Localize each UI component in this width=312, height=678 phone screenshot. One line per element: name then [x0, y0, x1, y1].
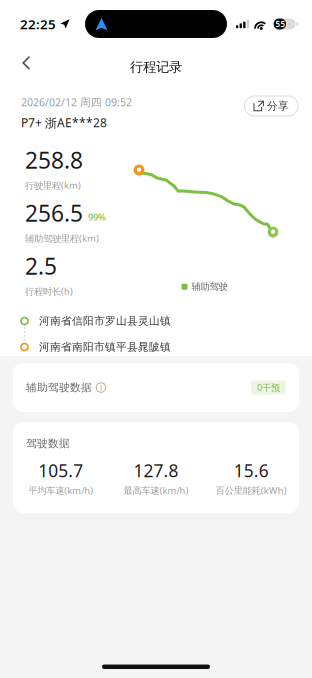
- staticText: i: [100, 382, 102, 393]
- staticText: 行程记录: [130, 59, 182, 75]
- staticText: 行程时长(h): [25, 285, 73, 297]
- staticText: 百公里能耗(kWh): [216, 484, 287, 496]
- staticText: 分享: [267, 99, 289, 112]
- staticText: 55: [276, 19, 286, 29]
- staticText: 22:25: [20, 15, 56, 33]
- staticText: 0干预: [257, 381, 280, 394]
- staticText: 辅助驾驶: [191, 281, 227, 292]
- button[interactable]: 分享: [244, 96, 298, 116]
- staticText: 河南省南阳市镇平县晁陂镇: [39, 340, 171, 353]
- staticText: 平均车速(km/h): [28, 484, 93, 496]
- staticText: 驾驶数据: [26, 437, 70, 450]
- staticText: 辅助驾驶数据: [26, 381, 92, 394]
- staticText: 最高车速(km/h): [123, 484, 188, 496]
- staticText: 105.7: [38, 459, 83, 482]
- button[interactable]: 返回: [8, 47, 44, 79]
- staticText: 15.6: [234, 459, 269, 482]
- staticText: 127.8: [133, 459, 178, 482]
- staticText: 2.5: [25, 251, 57, 281]
- staticText: 行驶里程(km): [25, 179, 81, 191]
- staticText: 辅助驾驶里程(km): [25, 232, 99, 244]
- staticText: 2026/02/12 周四 09:52: [21, 95, 132, 109]
- staticText: 258.8: [25, 145, 83, 175]
- staticText: P7+ 浙AE***28: [21, 114, 107, 130]
- staticText: 河南省信阳市罗山县灵山镇: [39, 314, 171, 327]
- staticText: 99%: [88, 211, 106, 223]
- staticText: 256.5: [25, 198, 83, 228]
